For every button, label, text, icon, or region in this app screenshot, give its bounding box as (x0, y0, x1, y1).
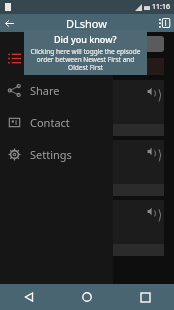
button[interactable]: ment: (10, 140, 164, 196)
staticText: y, author of y Designe... (14, 86, 52, 104)
button[interactable]: y, author of y Designe... (10, 80, 164, 136)
button[interactable]: Share (0, 74, 113, 106)
button[interactable]: Toggle episode order (156, 14, 174, 32)
button[interactable]: Recents (116, 284, 174, 310)
button[interactable]: ion Retirement (10, 200, 164, 256)
staticText: Clicking here will toggle the episode or… (28, 47, 143, 72)
staticText: Played (76, 62, 98, 72)
staticText: Contact (30, 115, 70, 130)
button[interactable]: Settings (0, 138, 113, 170)
button[interactable]: Back (0, 284, 58, 310)
staticText: Episodes (30, 51, 76, 66)
staticText: ment: (14, 146, 34, 156)
staticText: DLshow (66, 16, 107, 31)
button[interactable]: Contact (0, 106, 113, 138)
button[interactable]: Home (58, 284, 116, 310)
staticText: Settings (30, 147, 72, 162)
button[interactable]: Played (10, 58, 164, 75)
staticText: Did you know? (54, 33, 117, 45)
button[interactable]: Episodes (0, 42, 113, 74)
staticText: nload (13, 126, 31, 135)
staticText: Share (30, 83, 60, 98)
button[interactable]: Back (0, 14, 18, 32)
staticText: 11:16 (152, 2, 170, 12)
